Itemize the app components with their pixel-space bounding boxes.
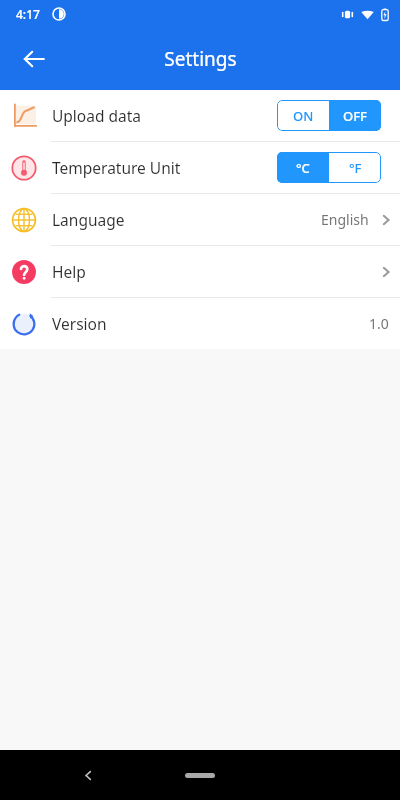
staticText: English: [321, 210, 369, 229]
staticText: Language: [52, 209, 125, 230]
button[interactable]: OFF: [329, 100, 381, 131]
button[interactable]: Back: [66, 753, 110, 797]
button[interactable]: ON: [277, 100, 329, 131]
staticText: ON: [293, 107, 314, 125]
button[interactable]: Home: [185, 773, 215, 778]
staticText: °F: [349, 159, 362, 177]
button[interactable]: Upload data: [0, 90, 400, 142]
staticText: 1.0: [369, 314, 389, 333]
staticText: Version: [52, 313, 107, 334]
button[interactable]: Language: [0, 194, 400, 246]
button[interactable]: Help: [0, 246, 400, 298]
staticText: 4:17: [16, 6, 40, 22]
staticText: Settings: [164, 46, 237, 72]
button[interactable]: °F: [329, 152, 381, 183]
button[interactable]: Temperature Unit: [0, 142, 400, 194]
staticText: Temperature Unit: [52, 157, 181, 178]
staticText: Help: [52, 261, 86, 282]
button[interactable]: Back: [10, 35, 58, 83]
button[interactable]: Version: [0, 298, 400, 349]
staticText: Upload data: [52, 105, 142, 126]
staticText: °C: [296, 159, 310, 177]
button[interactable]: °C: [277, 152, 329, 183]
staticText: OFF: [343, 107, 367, 125]
